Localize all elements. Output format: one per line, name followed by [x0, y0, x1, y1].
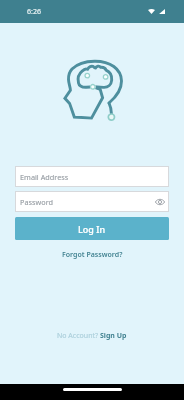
staticText: 6:26	[27, 7, 41, 17]
staticText: Forgot Password?	[62, 250, 123, 260]
button[interactable]: Forgot Password?	[58, 248, 126, 262]
button[interactable]: Log In	[15, 217, 169, 240]
button[interactable]: Email Address	[15, 166, 169, 187]
button[interactable]: No Account?	[57, 329, 127, 343]
button[interactable]: Password	[15, 191, 169, 212]
staticText: Sign Up	[100, 331, 127, 341]
button[interactable]: Show password	[153, 193, 167, 210]
staticText: No Account?	[57, 331, 100, 341]
staticText: Log In	[78, 223, 106, 235]
staticText: Password	[20, 197, 54, 207]
staticText: Email Address	[20, 172, 69, 182]
